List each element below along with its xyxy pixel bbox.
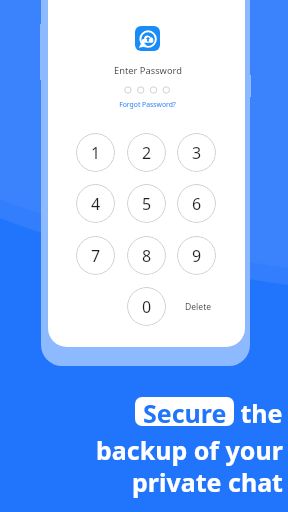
button[interactable]: 1: [76, 133, 115, 172]
button[interactable]: 3: [177, 133, 216, 172]
staticText: 0: [142, 296, 152, 318]
button[interactable]: 5: [127, 184, 166, 223]
staticText: 7: [91, 245, 101, 267]
staticText: 6: [192, 193, 202, 215]
staticText: 8: [142, 245, 152, 267]
button[interactable]: 0: [127, 287, 166, 326]
staticText: 4: [91, 193, 101, 215]
button[interactable]: Forgot Password?: [115, 99, 180, 110]
staticText: private chat: [132, 465, 283, 499]
staticText: Secure: [143, 397, 227, 425]
staticText: 1: [91, 142, 101, 164]
staticText: 2: [142, 142, 152, 164]
staticText: 3: [192, 142, 202, 164]
other: App icon: [135, 26, 160, 51]
staticText: backup of your: [96, 433, 283, 467]
staticText: Delete: [185, 301, 212, 313]
button[interactable]: 7: [76, 236, 115, 275]
button[interactable]: 2: [127, 133, 166, 172]
button[interactable]: 6: [177, 184, 216, 223]
staticText: 5: [142, 193, 152, 215]
staticText: Enter Password: [114, 64, 182, 77]
staticText: Forgot Password?: [119, 100, 176, 109]
button[interactable]: 8: [127, 236, 166, 275]
staticText: the: [234, 396, 283, 425]
button[interactable]: 9: [177, 236, 216, 275]
staticText: 9: [192, 245, 202, 267]
button[interactable]: 4: [76, 184, 115, 223]
button[interactable]: Delete: [179, 287, 218, 326]
